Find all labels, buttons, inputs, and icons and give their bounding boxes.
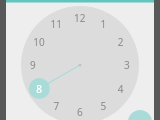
button[interactable]: Hour 8, selected (30, 79, 51, 100)
button[interactable]: Confirm time (128, 110, 152, 120)
